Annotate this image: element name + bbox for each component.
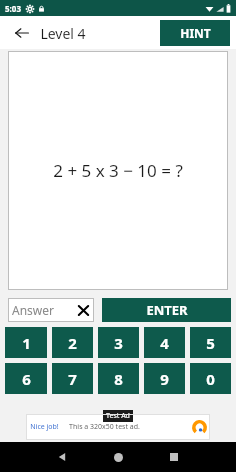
staticText: Test Ad [106,411,130,421]
button[interactable]: 1 [5,327,47,358]
button[interactable]: 6 [5,363,47,394]
staticText: Level 4 [40,24,86,43]
button[interactable]: Answer [8,298,94,322]
button[interactable]: 4 [144,327,185,358]
button[interactable]: 2 [52,327,93,358]
button[interactable]: Back [52,447,72,467]
staticText: 2 [68,333,77,353]
staticText: ENTER [146,301,188,319]
staticText: 5 [206,333,215,353]
staticText: 7 [68,369,77,389]
button[interactable]: 7 [52,363,93,394]
staticText: Nice job! [30,422,59,432]
staticText: 2 + 5 x 3 − 10 = ? [53,159,183,182]
staticText: This a 320x50 test ad. [69,422,140,432]
staticText: 6 [22,369,31,389]
button[interactable]: ENTER [102,298,231,322]
button[interactable]: 3 [98,327,139,358]
staticText: Answer [12,302,54,318]
staticText: 0 [206,369,215,389]
button[interactable]: HINT [160,20,230,46]
button[interactable]: Recents [164,447,184,467]
staticText: 4 [160,333,169,353]
button[interactable]: Back [12,23,32,43]
staticText: 9 [160,369,169,389]
button[interactable]: 9 [144,363,185,394]
staticText: 5:03 [5,3,21,14]
staticText: 1 [22,333,31,353]
button[interactable]: 0 [190,363,231,394]
button[interactable]: 8 [98,363,139,394]
staticText: 8 [114,369,123,389]
staticText: 3 [114,333,123,353]
button[interactable]: 5 [190,327,231,358]
button[interactable]: Test Ad [26,414,210,440]
staticText: HINT [180,25,211,41]
button[interactable]: Home [108,447,128,467]
